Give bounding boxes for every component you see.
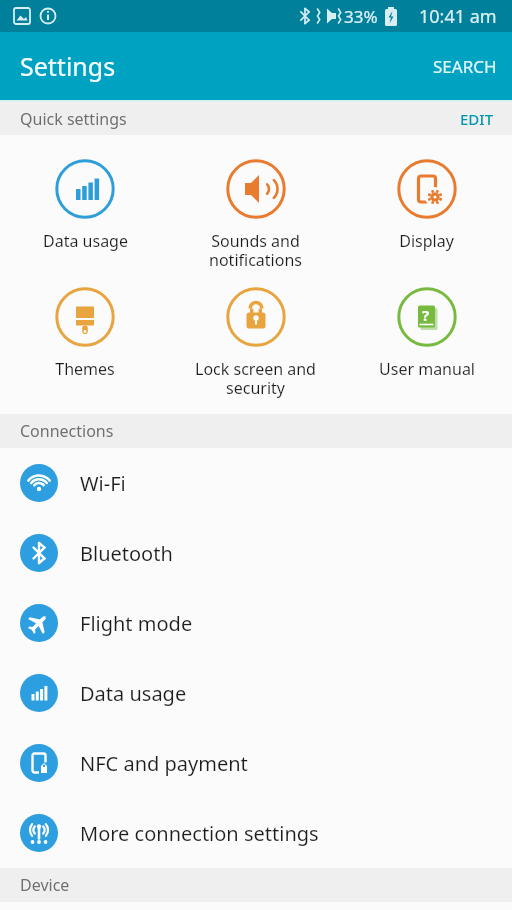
button[interactable]: SEARCH xyxy=(433,32,512,100)
staticText: Wi-Fi xyxy=(80,470,126,497)
staticText: Bluetooth xyxy=(80,540,173,567)
staticText: More connection settings xyxy=(80,820,319,847)
staticText: Settings xyxy=(20,49,116,83)
staticText: Sounds and notifications xyxy=(209,230,302,271)
staticText: Flight mode xyxy=(80,610,193,637)
staticText: 33% xyxy=(344,5,378,28)
staticText: Data usage xyxy=(43,230,128,252)
staticText: EDIT xyxy=(460,109,494,129)
button[interactable]: Themes xyxy=(0,271,170,380)
staticText: NFC and payment xyxy=(80,750,248,777)
button[interactable]: Flight mode xyxy=(0,588,512,658)
button[interactable]: EDIT xyxy=(460,102,512,135)
button[interactable]: Display xyxy=(341,135,512,252)
staticText: Data usage xyxy=(80,680,187,707)
staticText: Themes xyxy=(55,358,115,380)
button[interactable]: ? xyxy=(341,271,512,380)
button[interactable]: Lock screen and security xyxy=(170,271,341,399)
staticText: Quick settings xyxy=(20,108,127,130)
button[interactable]: Wi-Fi xyxy=(0,448,512,518)
staticText: Lock screen and security xyxy=(195,358,316,399)
staticText: Connections xyxy=(20,420,114,442)
staticText: ? xyxy=(422,305,430,325)
button[interactable]: More connection settings xyxy=(0,798,512,868)
staticText: Display xyxy=(399,230,454,252)
button[interactable]: Data usage xyxy=(0,658,512,728)
button[interactable]: NFC and payment xyxy=(0,728,512,798)
button[interactable]: Sounds and notifications xyxy=(170,135,341,271)
staticText: 10:41 am xyxy=(419,4,497,29)
staticText: User manual xyxy=(379,358,475,380)
staticText: SEARCH xyxy=(433,55,497,78)
button[interactable]: Bluetooth xyxy=(0,518,512,588)
staticText: Device xyxy=(20,874,70,896)
button[interactable]: Data usage xyxy=(0,135,170,252)
